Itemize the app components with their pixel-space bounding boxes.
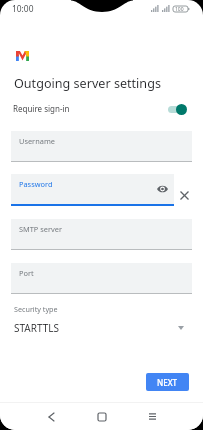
- button[interactable]: STARTTLS: [0, 320, 203, 336]
- staticText: SMTP server: [19, 224, 62, 234]
- staticText: Outgoing server settings: [14, 75, 161, 92]
- staticText: Username: [19, 136, 55, 146]
- staticText: Port: [19, 268, 34, 278]
- button[interactable]: SMTP server: [11, 219, 192, 249]
- button[interactable]: Clear: [178, 189, 191, 202]
- staticText: STARTTLS: [14, 321, 60, 335]
- staticText: Password: [19, 179, 53, 189]
- button[interactable]: Require sign-in: [0, 98, 203, 118]
- button[interactable]: Back: [36, 403, 66, 430]
- staticText: Require sign-in: [13, 103, 70, 114]
- button[interactable]: Require sign-in toggle: [166, 100, 190, 116]
- button[interactable]: Show password: [156, 183, 168, 195]
- button[interactable]: Password: [11, 174, 174, 204]
- button[interactable]: Home: [87, 403, 117, 430]
- button[interactable]: Username: [11, 131, 192, 161]
- staticText: 100: [175, 6, 184, 12]
- button[interactable]: Recents: [137, 403, 167, 430]
- staticText: Security type: [14, 304, 58, 314]
- staticText: 10:00: [12, 3, 34, 14]
- button[interactable]: NEXT: [146, 373, 189, 391]
- button[interactable]: Port: [11, 263, 192, 293]
- staticText: NEXT: [157, 377, 178, 388]
